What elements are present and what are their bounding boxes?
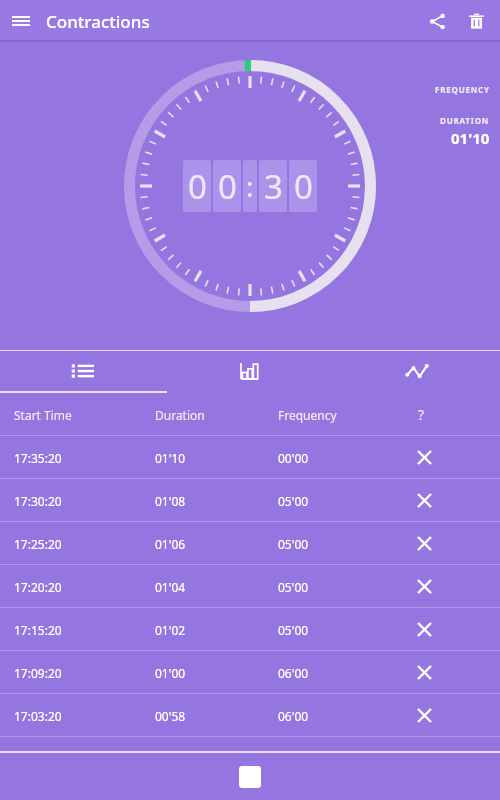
- staticText: 0: [218, 164, 237, 209]
- staticText: 17:35:20: [14, 450, 155, 466]
- staticText: 01'02: [155, 622, 278, 638]
- staticText: 00'58: [155, 708, 278, 724]
- staticText: ?: [418, 405, 425, 424]
- button[interactable]: Delete entry: [418, 522, 500, 565]
- button[interactable]: Share: [416, 0, 458, 42]
- staticText: 00'00: [278, 450, 418, 466]
- staticText: 06'00: [278, 665, 418, 681]
- staticText: Duration: [155, 407, 278, 423]
- staticText: 0: [294, 164, 313, 209]
- staticText: 17:20:20: [14, 579, 155, 595]
- staticText: 05'00: [278, 622, 418, 638]
- staticText: 01'08: [155, 493, 278, 509]
- button[interactable]: Stop: [239, 766, 261, 788]
- button[interactable]: Delete entry: [418, 651, 500, 694]
- staticText: 17:30:20: [14, 493, 155, 509]
- button[interactable]: Delete entry: [418, 436, 500, 479]
- staticText: 01'10: [451, 128, 490, 148]
- staticText: 17:25:20: [14, 536, 155, 552]
- staticText: 17:09:20: [14, 665, 155, 681]
- staticText: :: [246, 167, 254, 205]
- button[interactable]: Line chart: [333, 351, 500, 391]
- staticText: 06'00: [278, 708, 418, 724]
- staticText: 01'04: [155, 579, 278, 595]
- button[interactable]: Bar chart: [166, 351, 333, 391]
- staticText: 17:03:20: [14, 708, 155, 724]
- button[interactable]: 17:35:20: [0, 436, 500, 479]
- staticText: 01'10: [155, 450, 278, 466]
- staticText: 0: [188, 164, 207, 209]
- button[interactable]: Delete entry: [418, 479, 500, 522]
- button[interactable]: 17:30:20: [0, 479, 500, 522]
- staticText: FREQUENCY: [435, 84, 490, 95]
- button[interactable]: Delete entry: [418, 565, 500, 608]
- staticText: DURATION: [440, 115, 490, 126]
- button[interactable]: Menu: [0, 0, 42, 42]
- staticText: 05'00: [278, 536, 418, 552]
- button[interactable]: Delete: [458, 0, 494, 42]
- staticText: Start Time: [14, 407, 155, 423]
- staticText: 3: [264, 164, 283, 209]
- button[interactable]: 17:25:20: [0, 522, 500, 565]
- button[interactable]: Delete entry: [418, 694, 500, 737]
- button[interactable]: 17:15:20: [0, 608, 500, 651]
- staticText: Frequency: [278, 407, 418, 423]
- staticText: 05'00: [278, 579, 418, 595]
- button[interactable]: List view: [0, 351, 166, 391]
- staticText: 17:15:20: [14, 622, 155, 638]
- staticText: 01'06: [155, 536, 278, 552]
- staticText: Contractions: [46, 10, 150, 33]
- button[interactable]: 17:20:20: [0, 565, 500, 608]
- button[interactable]: 17:09:20: [0, 651, 500, 694]
- staticText: 05'00: [278, 493, 418, 509]
- button[interactable]: 17:03:20: [0, 694, 500, 737]
- staticText: 01'00: [155, 665, 278, 681]
- button[interactable]: Delete entry: [418, 608, 500, 651]
